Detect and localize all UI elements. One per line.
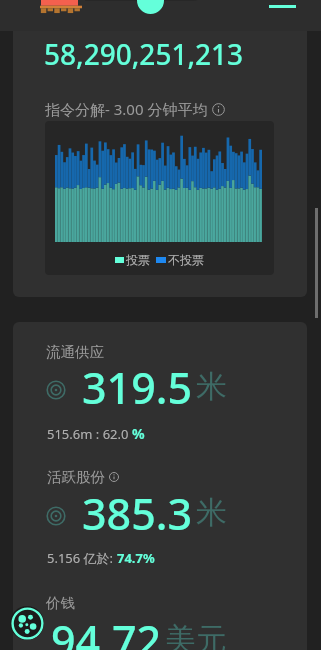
staticText: 5.156 亿於: bbox=[47, 549, 117, 567]
staticText: 投票 bbox=[126, 252, 150, 267]
staticText: % bbox=[132, 424, 145, 443]
staticText: 价钱 bbox=[46, 594, 75, 612]
staticText: 指令分解- 3.00 分钟平均 bbox=[45, 99, 208, 119]
staticText: 74.7% bbox=[117, 549, 155, 567]
staticText: 米 bbox=[196, 493, 227, 532]
staticText: 515.6m : 62.0 bbox=[47, 425, 132, 443]
staticText: 流通供应 bbox=[46, 343, 104, 361]
staticText: 385.3 bbox=[82, 484, 193, 543]
staticText: 94.72 bbox=[51, 611, 162, 650]
staticText: 58,290,251,213 bbox=[44, 35, 244, 73]
staticText: 美元 bbox=[165, 620, 227, 650]
staticText: 319.5 bbox=[82, 358, 193, 417]
staticText: 米 bbox=[196, 367, 227, 406]
button[interactable]: Network nodes bbox=[10, 606, 44, 640]
staticText: 活跃股份 bbox=[47, 468, 105, 486]
staticText: 不投票 bbox=[168, 252, 204, 267]
button[interactable]: Menu bbox=[269, 0, 296, 8]
button[interactable]: Add bbox=[137, 0, 164, 14]
